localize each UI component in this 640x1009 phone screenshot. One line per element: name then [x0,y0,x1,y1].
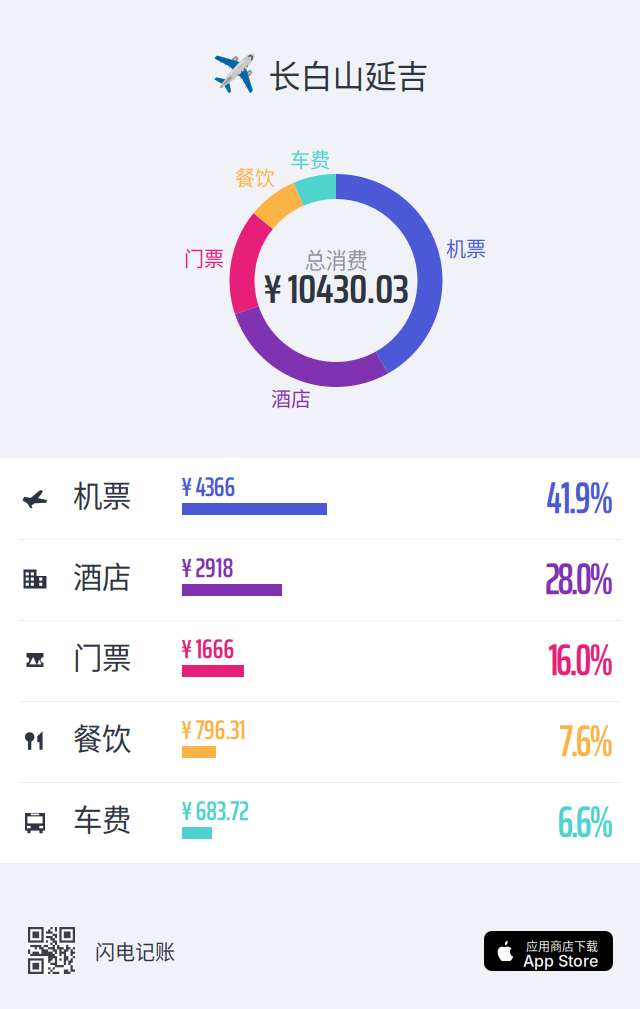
staticText: 长白山延吉 [268,51,428,97]
staticText: 闪电记账 [95,936,175,965]
staticText: 车费 [290,144,330,173]
button[interactable]: 酒店 [0,539,640,620]
staticText: 车费 [73,797,131,839]
button[interactable]: 车费 [0,782,640,863]
button[interactable]: 门票 [0,620,640,701]
button[interactable]: 应用商店下载 [484,931,613,971]
staticText: ¥ 1666 [181,628,234,670]
staticText: 餐饮 [73,716,131,758]
staticText: 机票 [446,233,486,262]
staticText: 总消费 [304,244,367,274]
staticText: ¥ 2918 [181,547,233,589]
staticText: ¥ 4366 [181,466,235,508]
staticText: 16.0% [548,625,614,695]
staticText: ✈️ [211,53,256,95]
button[interactable]: 机票 [0,458,640,539]
staticText: 6.6% [557,787,614,857]
staticText: App Store [523,951,598,971]
staticText: 门票 [73,635,131,677]
staticText: 机票 [73,473,131,515]
staticText: 7.6% [559,706,614,776]
staticText: 酒店 [271,383,311,412]
staticText: 41.9% [546,463,614,533]
staticText: ¥ 796.31 [181,709,246,751]
staticText: 应用商店下载 [526,937,598,955]
staticText: 餐饮 [235,162,275,191]
staticText: ¥ 10430.03 [263,257,409,320]
button[interactable]: 餐饮 [0,701,640,782]
staticText: 28.0% [545,544,614,614]
staticText: ¥ 683.72 [181,790,249,832]
staticText: 门票 [184,243,224,272]
staticText: 酒店 [73,554,131,596]
